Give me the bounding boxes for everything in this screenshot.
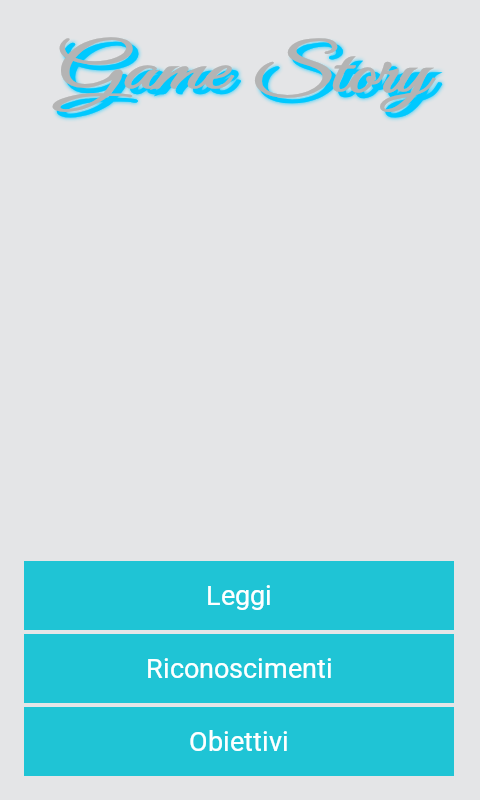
- button[interactable]: [24, 707, 454, 776]
- button[interactable]: [24, 634, 454, 703]
- button[interactable]: [24, 561, 454, 630]
